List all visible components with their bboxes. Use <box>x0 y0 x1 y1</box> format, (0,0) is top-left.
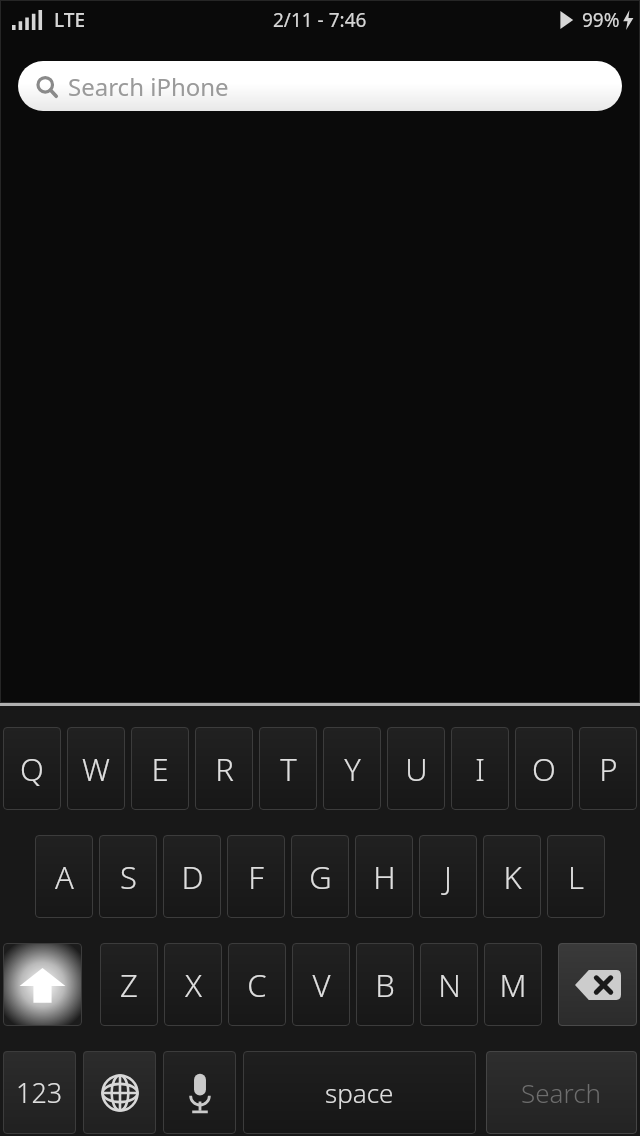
staticText: U <box>405 748 428 790</box>
staticText: Z <box>120 964 138 1006</box>
button[interactable]: U <box>387 727 445 810</box>
staticText: N <box>438 964 461 1006</box>
button[interactable]: S <box>99 835 157 918</box>
button[interactable]: G <box>291 835 349 918</box>
staticText: 123 <box>16 1074 63 1111</box>
staticText: LTE <box>54 7 86 33</box>
button[interactable]: 123 <box>3 1051 76 1134</box>
staticText: Q <box>20 748 44 790</box>
staticText: 2/11 - 7:46 <box>273 7 367 33</box>
button[interactable]: E <box>131 727 189 810</box>
staticText: L <box>568 856 584 898</box>
staticText: S <box>120 856 137 898</box>
staticText: V <box>312 964 331 1006</box>
button[interactable]: T <box>259 727 317 810</box>
staticText: J <box>444 856 452 898</box>
staticText: P <box>599 748 618 790</box>
staticText: H <box>373 856 396 898</box>
button[interactable]: A <box>35 835 93 918</box>
button[interactable]: R <box>195 727 253 810</box>
staticText: Search <box>521 1075 602 1110</box>
button[interactable]: D <box>163 835 221 918</box>
button[interactable]: Change keyboard language <box>83 1051 156 1134</box>
staticText: W <box>82 748 110 790</box>
staticText: E <box>151 748 169 790</box>
button[interactable]: F <box>227 835 285 918</box>
button[interactable]: Q <box>3 727 61 810</box>
staticText: 99% <box>582 7 620 33</box>
button[interactable]: space <box>243 1051 476 1134</box>
staticText: space <box>325 1075 394 1110</box>
staticText: B <box>375 964 395 1006</box>
button[interactable]: L <box>547 835 605 918</box>
button[interactable]: O <box>515 727 573 810</box>
button[interactable]: Search iPhone <box>18 61 622 111</box>
button[interactable]: W <box>67 727 125 810</box>
button[interactable]: J <box>419 835 477 918</box>
staticText: C <box>247 964 267 1006</box>
staticText: K <box>503 856 522 898</box>
button[interactable]: Shift <box>3 943 82 1026</box>
button[interactable]: Voice input <box>163 1051 236 1134</box>
staticText: O <box>532 748 556 790</box>
staticText: I <box>475 748 485 790</box>
button[interactable]: Z <box>100 943 158 1026</box>
button[interactable]: V <box>292 943 350 1026</box>
staticText: Search iPhone <box>68 70 229 103</box>
button[interactable]: N <box>420 943 478 1026</box>
staticText: X <box>185 964 202 1006</box>
button[interactable]: C <box>228 943 286 1026</box>
button[interactable]: X <box>164 943 222 1026</box>
staticText: M <box>499 964 527 1006</box>
button[interactable]: Y <box>323 727 381 810</box>
button[interactable]: M <box>484 943 542 1026</box>
staticText: D <box>181 856 204 898</box>
staticText: T <box>280 748 297 790</box>
button[interactable]: H <box>355 835 413 918</box>
button[interactable]: Search <box>486 1051 637 1134</box>
staticText: F <box>248 856 264 898</box>
button[interactable]: Backspace <box>558 943 637 1026</box>
button[interactable]: K <box>483 835 541 918</box>
button[interactable]: I <box>451 727 509 810</box>
staticText: Y <box>344 748 361 790</box>
staticText: G <box>309 856 332 898</box>
button[interactable]: B <box>356 943 414 1026</box>
button[interactable]: P <box>579 727 637 810</box>
staticText: A <box>55 856 74 898</box>
staticText: R <box>215 748 234 790</box>
